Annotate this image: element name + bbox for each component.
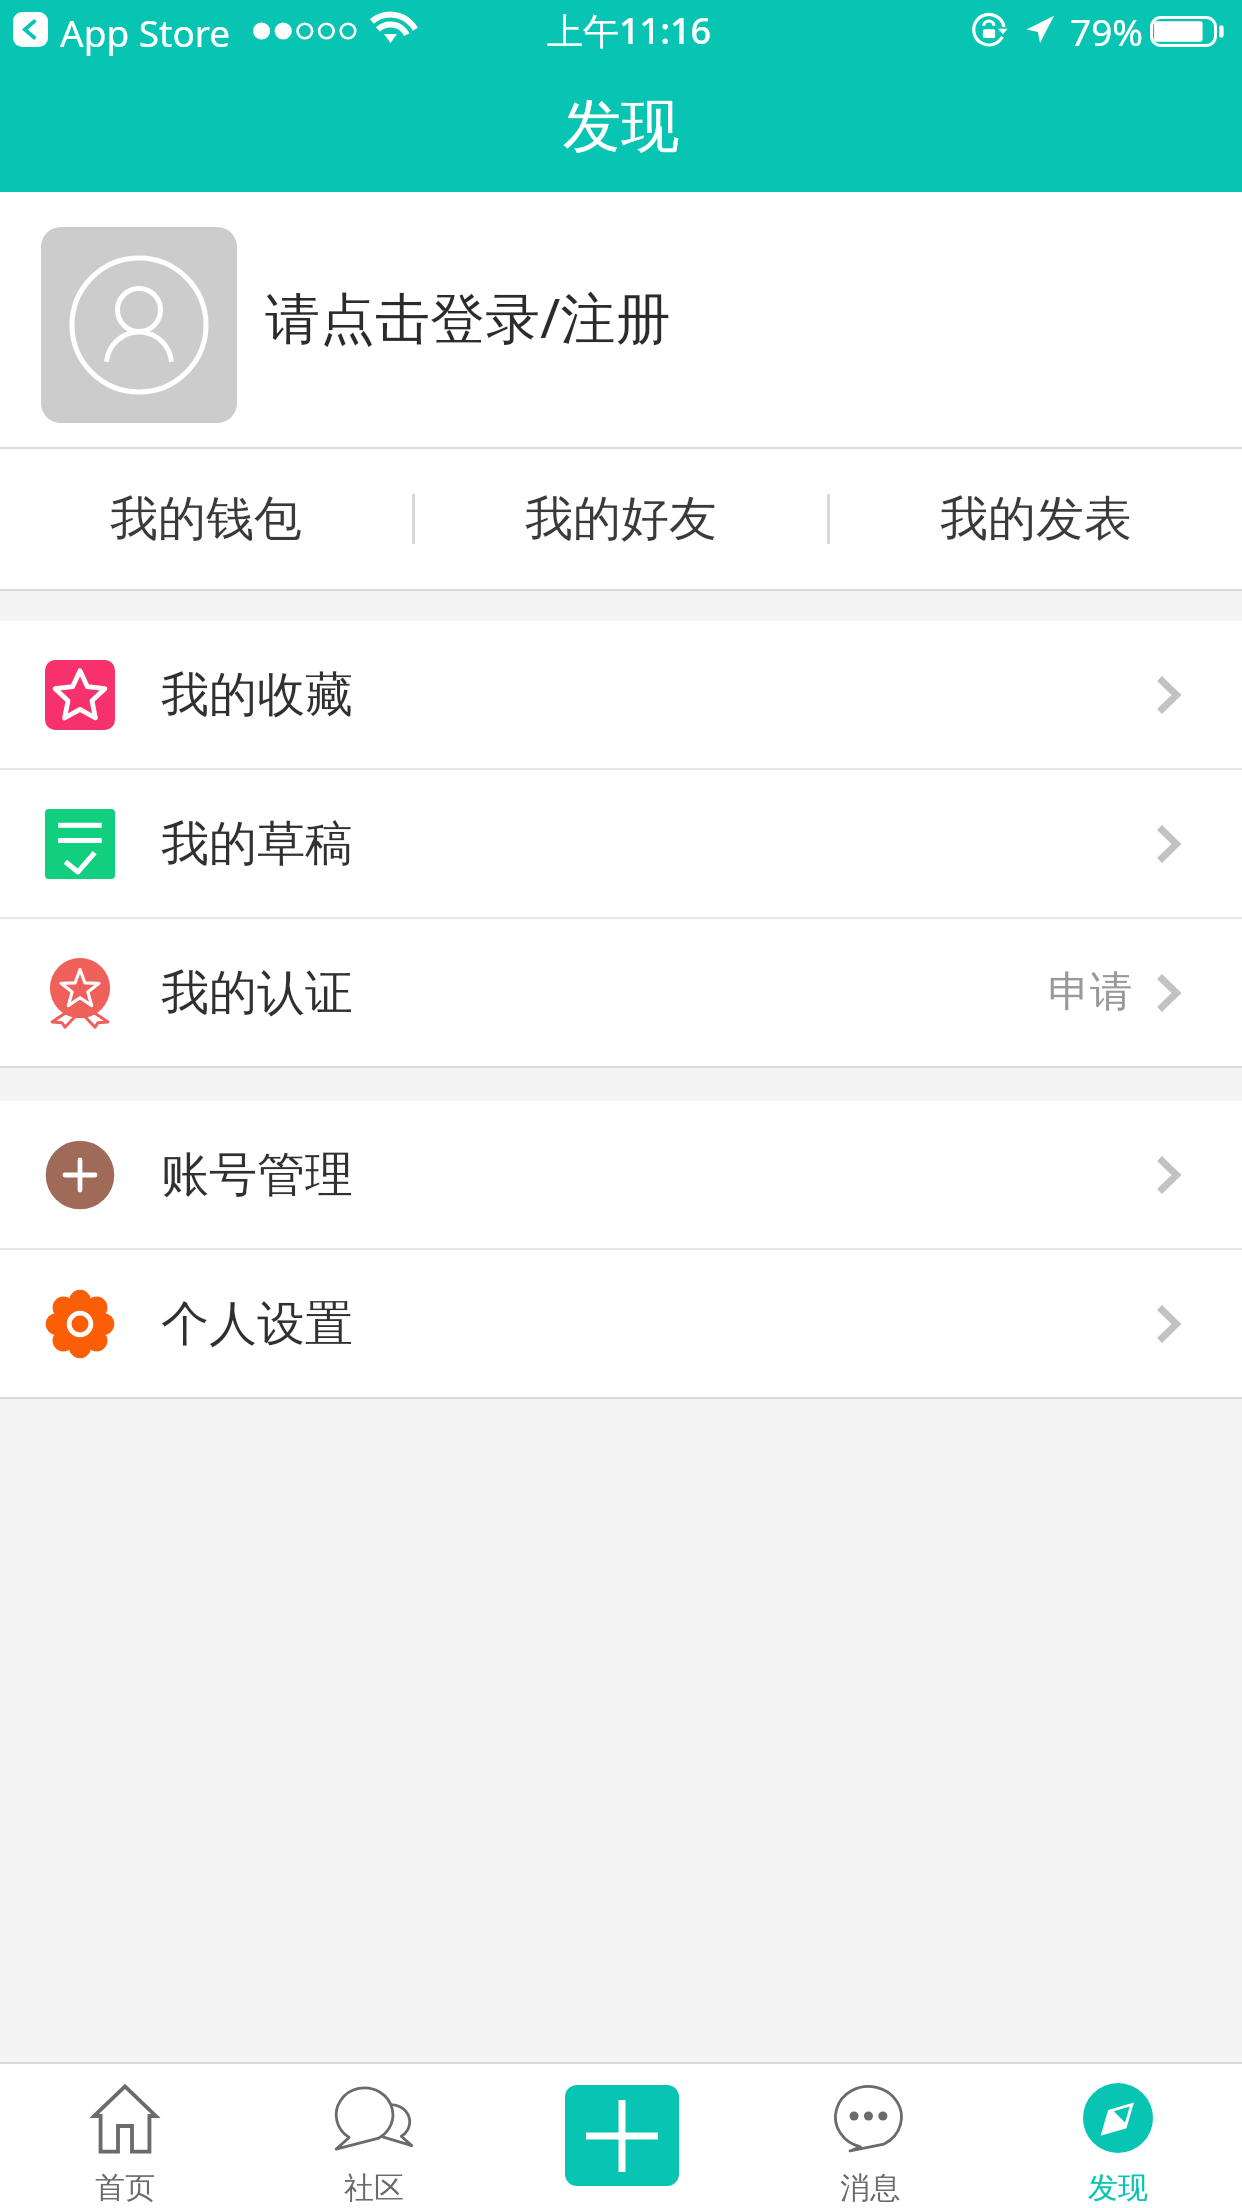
button[interactable]: 我的草稿 (0, 770, 1242, 917)
button[interactable]: 请点击登录/注册 (0, 192, 1242, 447)
staticText: 我的草稿 (161, 814, 353, 874)
button[interactable]: 账号管理 (0, 1101, 1242, 1248)
staticText: 请点击登录/注册 (265, 279, 671, 354)
button[interactable]: 个人设置 (0, 1250, 1242, 1397)
staticText: App Store (60, 7, 231, 57)
button[interactable]: 我的认证 (0, 919, 1242, 1066)
staticText: 我的认证 (161, 963, 353, 1023)
staticText: 首页 (95, 2169, 155, 2207)
button[interactable]: 我的好友 (415, 449, 827, 589)
staticText: 个人设置 (161, 1294, 353, 1354)
button[interactable]: 社区 (249, 2064, 498, 2208)
staticText: 社区 (344, 2169, 404, 2207)
staticText: 账号管理 (161, 1145, 353, 1205)
button[interactable]: 我的发表 (830, 449, 1242, 589)
staticText: 我的收藏 (161, 665, 353, 725)
button[interactable]: New post (498, 2064, 746, 2208)
staticText: 我的钱包 (110, 489, 302, 549)
staticText: 发现 (563, 90, 679, 163)
staticText: 申请 (1048, 966, 1132, 1019)
staticText: 发现 (1088, 2169, 1148, 2207)
button[interactable]: 消息 (746, 2064, 994, 2208)
button[interactable]: 发现 (994, 2064, 1242, 2208)
staticText: 79% (1070, 6, 1144, 56)
staticText: 上午11:16 (547, 6, 712, 55)
button[interactable]: 首页 (0, 2064, 249, 2208)
staticText: 我的好友 (525, 489, 717, 549)
button[interactable]: 我的钱包 (0, 449, 412, 589)
button[interactable]: 我的收藏 (0, 621, 1242, 768)
staticText: 我的发表 (940, 489, 1132, 549)
staticText: 消息 (840, 2169, 900, 2207)
